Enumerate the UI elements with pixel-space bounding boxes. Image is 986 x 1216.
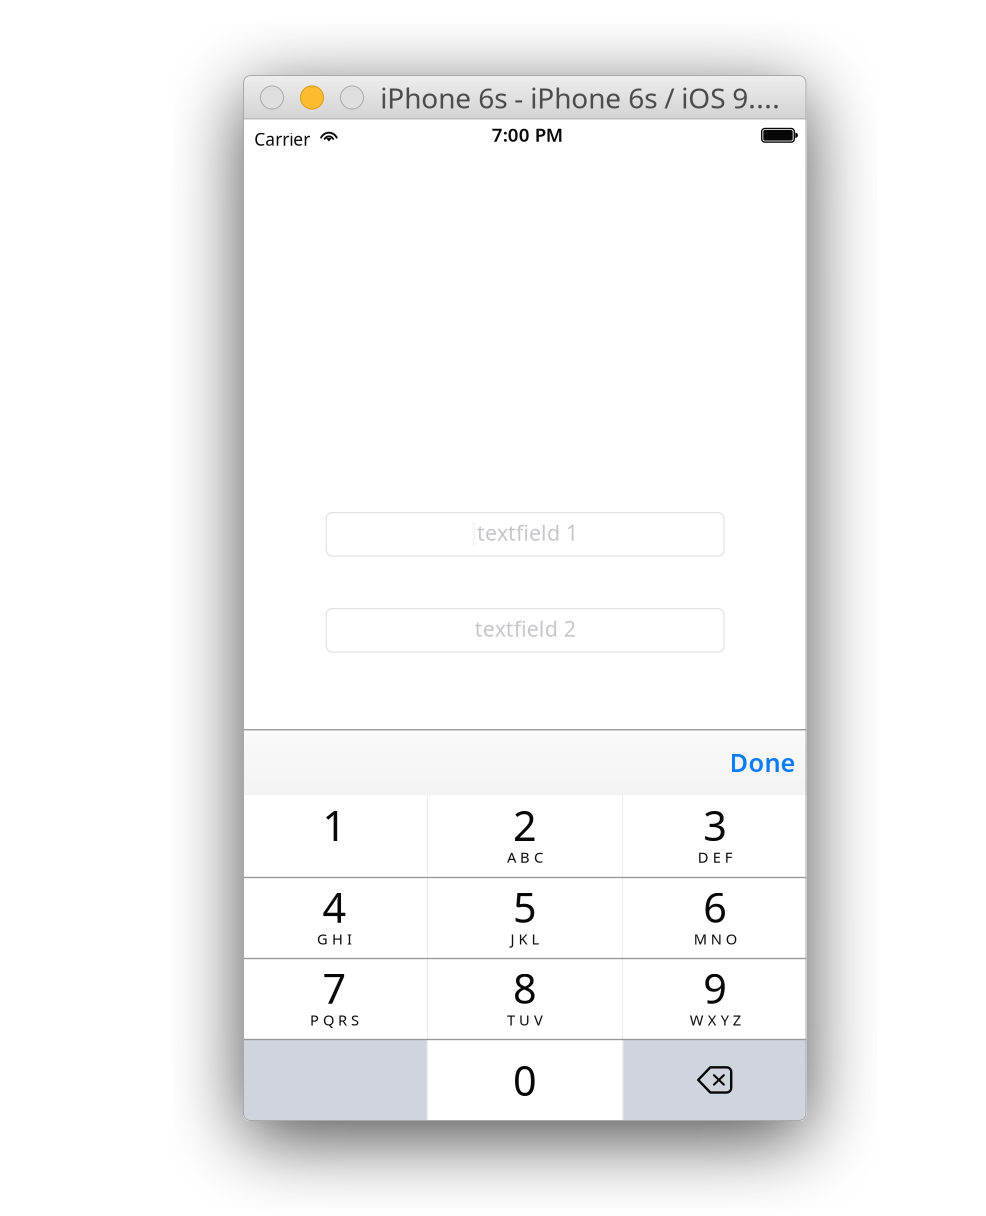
staticText: 3 — [703, 797, 727, 852]
staticText: 9 — [703, 960, 727, 1015]
button[interactable]: 1 — [242, 795, 427, 877]
staticText: textfield 2 — [475, 614, 576, 643]
staticText: T U V — [507, 1010, 543, 1030]
staticText: 7 — [323, 960, 347, 1015]
button[interactable]: Delete — [623, 1039, 807, 1120]
staticText: 6 — [703, 879, 727, 934]
staticText: 1 — [323, 797, 347, 852]
staticText: 2 — [513, 797, 537, 852]
staticText: iPhone 6s - iPhone 6s / iOS 9.... — [380, 79, 780, 116]
staticText: 5 — [513, 879, 537, 934]
staticText: Done — [729, 745, 795, 779]
staticText: D E F — [698, 847, 733, 867]
button[interactable]: 8 — [428, 958, 622, 1039]
button[interactable]: 0 — [428, 1039, 622, 1120]
button[interactable]: 9 — [623, 958, 807, 1039]
staticText: W X Y Z — [690, 1010, 741, 1030]
button[interactable]: Close — [260, 85, 284, 109]
staticText: J K L — [511, 929, 540, 949]
button[interactable]: 4 — [242, 877, 427, 958]
staticText: textfield 1 — [477, 518, 578, 547]
staticText: 0 — [513, 1052, 537, 1107]
staticText: A B C — [507, 847, 543, 867]
staticText: 8 — [513, 960, 537, 1015]
staticText: G H I — [317, 929, 352, 949]
button[interactable]: 6 — [623, 877, 807, 958]
button[interactable]: 7 — [242, 958, 427, 1039]
staticText: Carrier — [254, 127, 310, 150]
staticText: 7:00 PM — [492, 122, 563, 147]
button[interactable]: 2 — [428, 795, 622, 877]
button[interactable]: 3 — [623, 795, 807, 877]
staticText: 4 — [323, 879, 347, 934]
button[interactable]: Done — [718, 731, 806, 793]
button[interactable]: 5 — [428, 877, 622, 958]
button[interactable]: Minimize — [300, 85, 324, 109]
staticText: P Q R S — [310, 1010, 359, 1030]
staticText: M N O — [694, 929, 737, 949]
button[interactable]: Zoom — [340, 85, 364, 109]
